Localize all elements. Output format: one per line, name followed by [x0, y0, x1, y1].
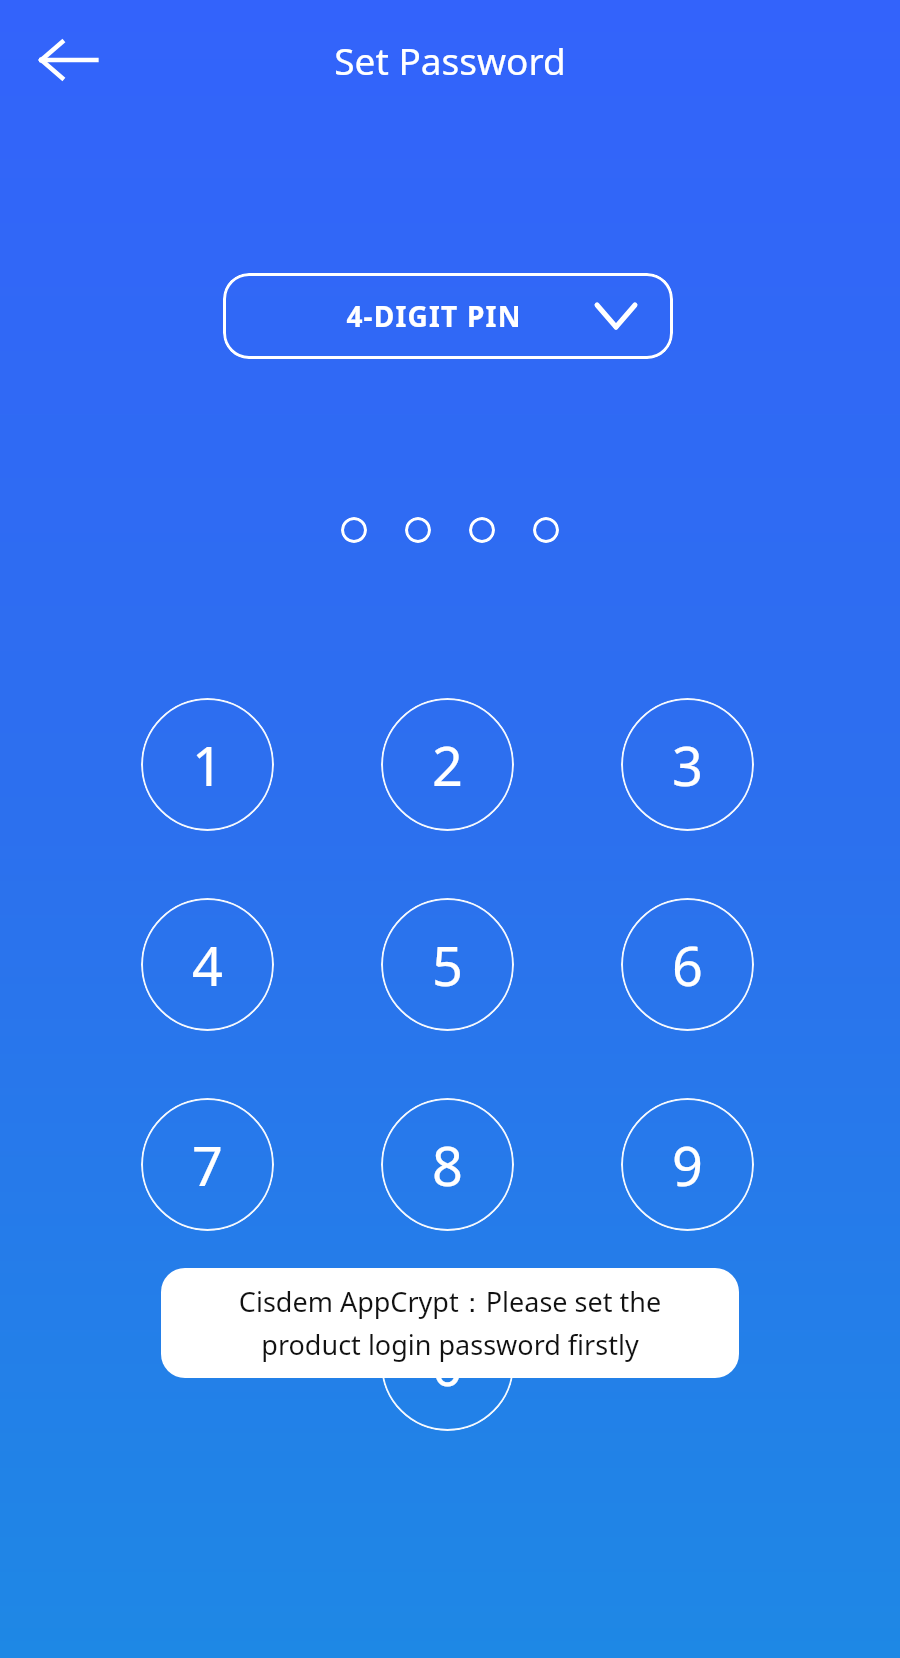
staticText: Cisdem AppCrypt：Please set the product l… [171, 1283, 729, 1363]
button[interactable]: 4 [141, 898, 274, 1031]
staticText: 9 [672, 1128, 703, 1202]
button[interactable]: 1 [141, 698, 274, 831]
button[interactable]: 0 [381, 1298, 514, 1431]
staticText: 5 [432, 928, 463, 1002]
staticText: 0 [432, 1328, 463, 1402]
staticText: 3 [672, 728, 703, 802]
button[interactable]: 6 [621, 898, 754, 1031]
button[interactable]: 7 [141, 1098, 274, 1231]
button[interactable]: 3 [621, 698, 754, 831]
staticText: Set Password [334, 35, 566, 85]
staticText: 4 [192, 928, 223, 1002]
staticText: 2 [432, 728, 463, 802]
button[interactable]: 9 [621, 1098, 754, 1231]
button[interactable]: 8 [381, 1098, 514, 1231]
button[interactable]: 5 [381, 898, 514, 1031]
staticText: 4-DIGIT PIN [346, 297, 522, 335]
staticText: 1 [192, 728, 223, 802]
button[interactable]: 2 [381, 698, 514, 831]
staticText: 8 [432, 1128, 463, 1202]
staticText: 6 [672, 928, 703, 1002]
button[interactable]: Back [18, 10, 118, 110]
button[interactable]: 4-DIGIT PIN [223, 273, 673, 359]
staticText: 7 [192, 1128, 223, 1202]
